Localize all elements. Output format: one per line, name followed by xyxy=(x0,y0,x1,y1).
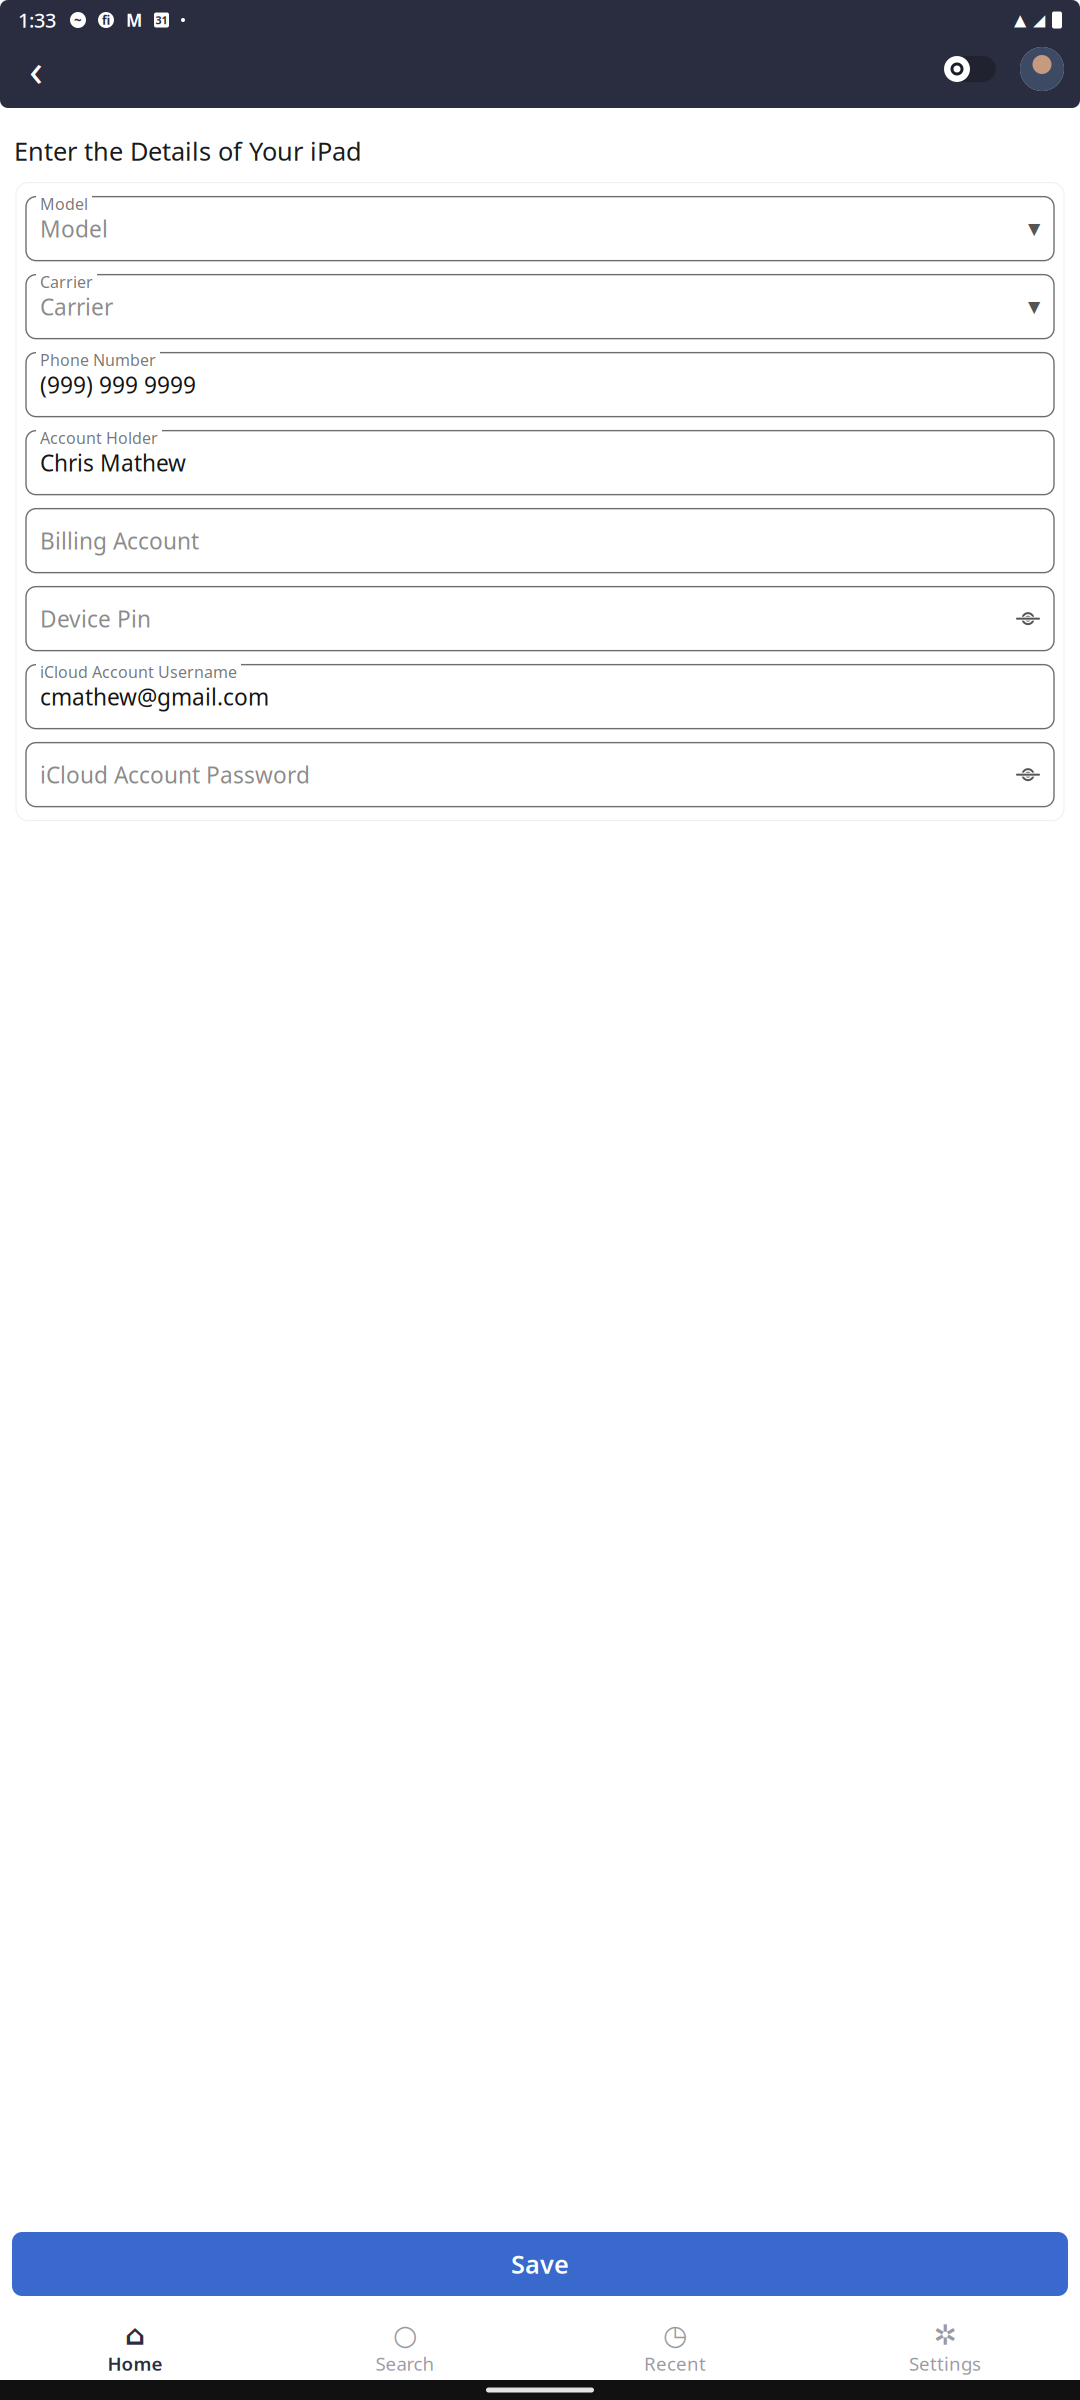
staticText: Account Holder xyxy=(40,427,158,448)
staticText: Phone Number xyxy=(40,349,156,370)
button[interactable]: Model xyxy=(26,197,1054,261)
staticText: Home xyxy=(107,2351,162,2376)
button[interactable]: ○ xyxy=(270,2314,540,2384)
staticText: 1:33 xyxy=(18,7,56,33)
staticText: Chris Mathew xyxy=(40,448,186,478)
button[interactable]: Carrier xyxy=(26,275,1054,339)
staticText: Carrier xyxy=(40,271,93,292)
staticText: ▼ xyxy=(1028,298,1040,316)
staticText: ◷ xyxy=(663,2319,687,2351)
staticText: Recent xyxy=(644,2351,706,2376)
button[interactable]: Device Pin xyxy=(26,587,1054,651)
staticText: cmathew@gmail.com xyxy=(40,682,269,712)
staticText: Settings xyxy=(909,2351,981,2376)
staticText: fi xyxy=(102,12,110,28)
button[interactable]: Save xyxy=(12,2232,1068,2296)
button[interactable]: iCloud Account Password xyxy=(26,743,1054,807)
button[interactable]: Billing Account xyxy=(26,509,1054,573)
button[interactable]: Chris Mathew xyxy=(26,431,1054,495)
button[interactable]: Toggle appearance xyxy=(942,49,998,89)
button[interactable]: ◷ xyxy=(540,2314,810,2384)
staticText: Save xyxy=(511,2247,569,2281)
staticText: (999) 999 9999 xyxy=(40,370,196,400)
staticText: M xyxy=(126,8,142,31)
button[interactable]: Back xyxy=(14,47,58,91)
staticText: Model xyxy=(40,193,88,214)
staticText: ○ xyxy=(393,2319,417,2351)
staticText: 31 xyxy=(155,13,167,27)
button[interactable]: Profile xyxy=(1018,45,1066,93)
staticText: ‹ xyxy=(29,39,43,99)
staticText: iCloud Account Password xyxy=(40,760,310,790)
staticText: ✲ xyxy=(933,2319,956,2351)
button[interactable]: cmathew@gmail.com xyxy=(26,665,1054,729)
staticText: Device Pin xyxy=(40,604,151,634)
staticText: Search xyxy=(375,2351,434,2376)
staticText: Enter the Details of Your iPad xyxy=(14,134,362,168)
staticText: Carrier xyxy=(40,292,113,322)
staticText: ⌂ xyxy=(125,2319,145,2351)
button[interactable]: ✲ xyxy=(810,2314,1080,2384)
staticText: ▲ xyxy=(1014,11,1026,29)
staticText: ~ xyxy=(74,11,82,29)
staticText: iCloud Account Username xyxy=(40,661,237,682)
button[interactable]: ⌂ xyxy=(0,2314,270,2384)
staticText: ◢ xyxy=(1033,11,1045,29)
button[interactable]: (999) 999 9999 xyxy=(26,353,1054,417)
staticText: ▼ xyxy=(1028,220,1040,238)
staticText: Billing Account xyxy=(40,526,199,556)
staticText: Model xyxy=(40,214,108,244)
